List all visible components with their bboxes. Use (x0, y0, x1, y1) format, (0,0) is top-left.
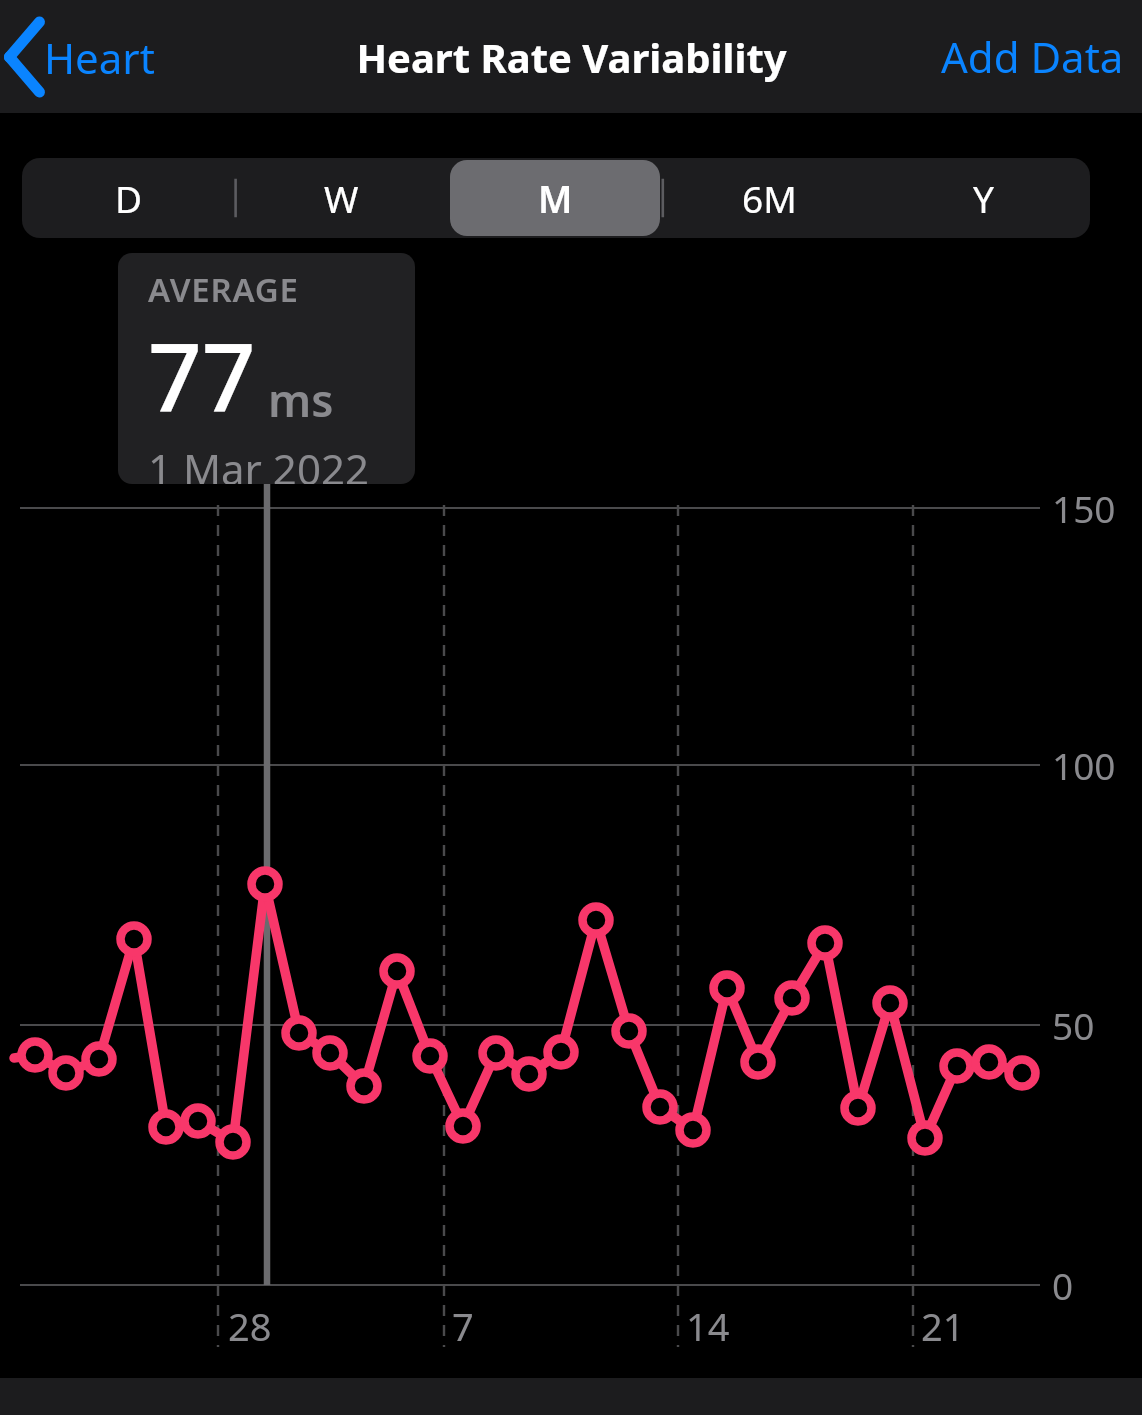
button[interactable]: W (235, 158, 448, 238)
staticText: AVERAGE (148, 267, 299, 312)
staticText: 50 (1052, 1000, 1095, 1050)
staticText: 77 (148, 312, 256, 440)
button[interactable]: M (448, 158, 662, 238)
staticText: 21 (921, 1300, 965, 1352)
staticText: 1 Mar 2022 (148, 440, 369, 484)
staticText: 0 (1052, 1260, 1074, 1310)
staticText: 100 (1052, 740, 1116, 790)
staticText: 7 (452, 1300, 474, 1352)
staticText: Heart Rate Variability (356, 30, 787, 84)
button[interactable]: Back to Heart (0, 20, 169, 94)
staticText: 14 (686, 1300, 730, 1352)
button[interactable]: Y (876, 158, 1090, 238)
staticText: Y (973, 173, 994, 223)
button[interactable]: Add Data (921, 14, 1142, 99)
button[interactable]: 6M (662, 158, 876, 238)
staticText: D (115, 173, 143, 223)
staticText: 6M (742, 173, 797, 223)
button[interactable]: D (22, 158, 235, 238)
staticText: M (538, 173, 573, 223)
staticText: 28 (228, 1300, 272, 1352)
staticText: ms (268, 369, 334, 430)
staticText: 150 (1052, 483, 1116, 533)
staticText: W (324, 173, 359, 223)
staticText: Add Data (941, 28, 1124, 85)
staticText: Heart (44, 29, 155, 86)
